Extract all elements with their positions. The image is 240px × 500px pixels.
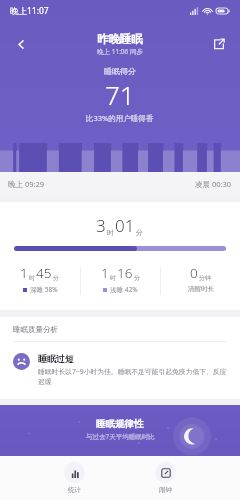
staticText: 1 bbox=[101, 264, 109, 282]
staticText: 比33%的用户睡得香 bbox=[86, 113, 154, 123]
staticText: 深睡 58% bbox=[30, 285, 58, 294]
staticText: 睡眠过短 bbox=[38, 353, 74, 364]
button[interactable]: 统计 bbox=[58, 460, 91, 496]
staticText: 时 bbox=[29, 274, 35, 282]
staticText: 晚上 09:29 bbox=[8, 179, 45, 189]
button[interactable]: 0 bbox=[161, 264, 240, 293]
button[interactable]: Share bbox=[204, 29, 234, 59]
button[interactable]: 睡眠规律性 bbox=[0, 405, 240, 500]
button[interactable]: 1 bbox=[0, 264, 80, 294]
staticText: 分钟 bbox=[199, 274, 211, 282]
staticText: 01 bbox=[115, 214, 135, 237]
staticText: 早睡了 bbox=[72, 486, 105, 500]
staticText: 清醒时长 bbox=[188, 285, 214, 293]
button[interactable]: 闹钟 bbox=[149, 460, 182, 496]
button[interactable]: 1 bbox=[81, 264, 160, 294]
staticText: 凌晨 00:30 bbox=[195, 179, 232, 189]
staticText: 时 bbox=[107, 228, 114, 237]
staticText: 分 bbox=[53, 274, 59, 282]
staticText: 晚上11:07 bbox=[10, 5, 49, 17]
staticText: 晚上 11:06 同步 bbox=[97, 47, 143, 56]
staticText: 71 bbox=[105, 77, 135, 112]
staticText: 45 bbox=[36, 264, 52, 282]
staticText: 闹钟 bbox=[159, 486, 172, 494]
staticText: 睡眠质量分析 bbox=[13, 325, 58, 334]
staticText: 1 bbox=[20, 264, 28, 282]
staticText: 昨晚睡眠 bbox=[97, 32, 143, 46]
staticText: 睡眠规律性 bbox=[96, 418, 144, 430]
staticText: 分 bbox=[134, 274, 140, 282]
staticText: 时 bbox=[110, 274, 116, 282]
staticText: 统计 bbox=[68, 486, 81, 494]
button[interactable]: 睡眠过短 bbox=[0, 342, 240, 399]
staticText: 分 bbox=[136, 228, 143, 237]
staticText: 睡眠时长以7~9小时为佳。睡眠不足可能引起免疫力低下、反应迟缓 bbox=[38, 367, 227, 386]
staticText: 3 bbox=[96, 214, 106, 237]
staticText: 睡眠得分 bbox=[104, 66, 136, 76]
staticText: 16 bbox=[117, 264, 133, 282]
button[interactable]: Back bbox=[6, 29, 36, 59]
staticText: 与过去7天平均睡眠时比 bbox=[86, 432, 155, 441]
staticText: 浅睡 42% bbox=[110, 285, 138, 294]
staticText: 0 bbox=[190, 264, 198, 282]
